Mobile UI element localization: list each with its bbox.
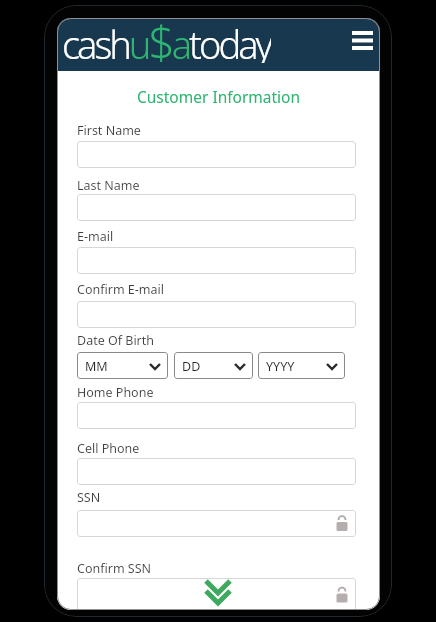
staticText: DD: [182, 358, 201, 375]
button[interactable]: [77, 458, 356, 485]
staticText: Last Name: [77, 177, 140, 194]
button[interactable]: YYYY: [258, 352, 345, 379]
staticText: YYYY: [266, 358, 295, 375]
button[interactable]: [77, 510, 356, 537]
button[interactable]: [77, 247, 356, 274]
button[interactable]: [203, 577, 234, 608]
staticText: Confirm E-mail: [77, 281, 164, 298]
staticText: SSN: [77, 489, 101, 506]
staticText: Date Of Birth: [77, 332, 155, 349]
button[interactable]: [77, 141, 356, 168]
staticText: First Name: [77, 122, 141, 139]
staticText: Customer Information: [57, 86, 380, 107]
staticText: E-mail: [77, 228, 114, 245]
staticText: MM: [85, 358, 108, 375]
staticText: Home Phone: [77, 384, 154, 401]
staticText: Confirm SSN: [77, 560, 152, 577]
button[interactable]: [77, 194, 356, 221]
staticText: Cell Phone: [77, 440, 140, 457]
button[interactable]: DD: [174, 352, 253, 379]
button[interactable]: [77, 578, 356, 610]
button[interactable]: [77, 402, 356, 429]
button[interactable]: MM: [77, 352, 168, 379]
button[interactable]: [347, 25, 379, 61]
staticText: cashu$atoday: [62, 18, 271, 63]
button[interactable]: [77, 301, 356, 328]
